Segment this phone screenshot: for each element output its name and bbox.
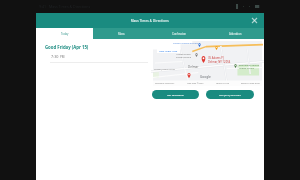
staticText: Call (518) 439-4951 (219, 93, 242, 96)
staticText: 35 Adams Pl, Delmar, NY 12054 (208, 56, 231, 63)
button[interactable]: Confession (150, 28, 207, 39)
staticText: Delmar (188, 65, 199, 69)
staticText: United States Postal Service (176, 53, 191, 59)
button[interactable]: View larger map (159, 49, 178, 52)
staticText: Create a Google account (173, 42, 199, 45)
staticText: Today (61, 32, 69, 36)
staticText: Good Friday (Apr 15) (45, 44, 89, 50)
staticText: Confession (172, 32, 186, 36)
staticText: Map data ©2022 (187, 82, 204, 85)
staticText: 7:30 (51, 54, 60, 59)
staticText: Google (200, 75, 211, 79)
button[interactable]: Get Directions (152, 90, 199, 99)
button[interactable]: Close (250, 16, 259, 25)
staticText: Mass (118, 32, 125, 36)
button[interactable]: Mass (93, 28, 150, 39)
staticText: Mass Times & Directions (131, 19, 169, 23)
staticText: Get Directions (167, 93, 184, 96)
staticText: Wham Justice Court (154, 68, 176, 71)
button[interactable]: Adoration (207, 28, 264, 39)
staticText: Adoration (229, 32, 242, 36)
staticText: 9:41 Mass Times & Directions (39, 4, 91, 9)
button[interactable]: Call (518) 439-4951 (206, 90, 254, 99)
staticText: PM (60, 55, 65, 59)
staticText: Keyboard shortcuts (155, 82, 175, 85)
staticText: View larger map (159, 49, 178, 52)
staticText: Report a map error (241, 82, 260, 85)
button[interactable]: Today (36, 28, 93, 39)
staticText: Terms of Use (216, 82, 229, 85)
staticText: Bethlehem Central Middle School (239, 64, 260, 70)
